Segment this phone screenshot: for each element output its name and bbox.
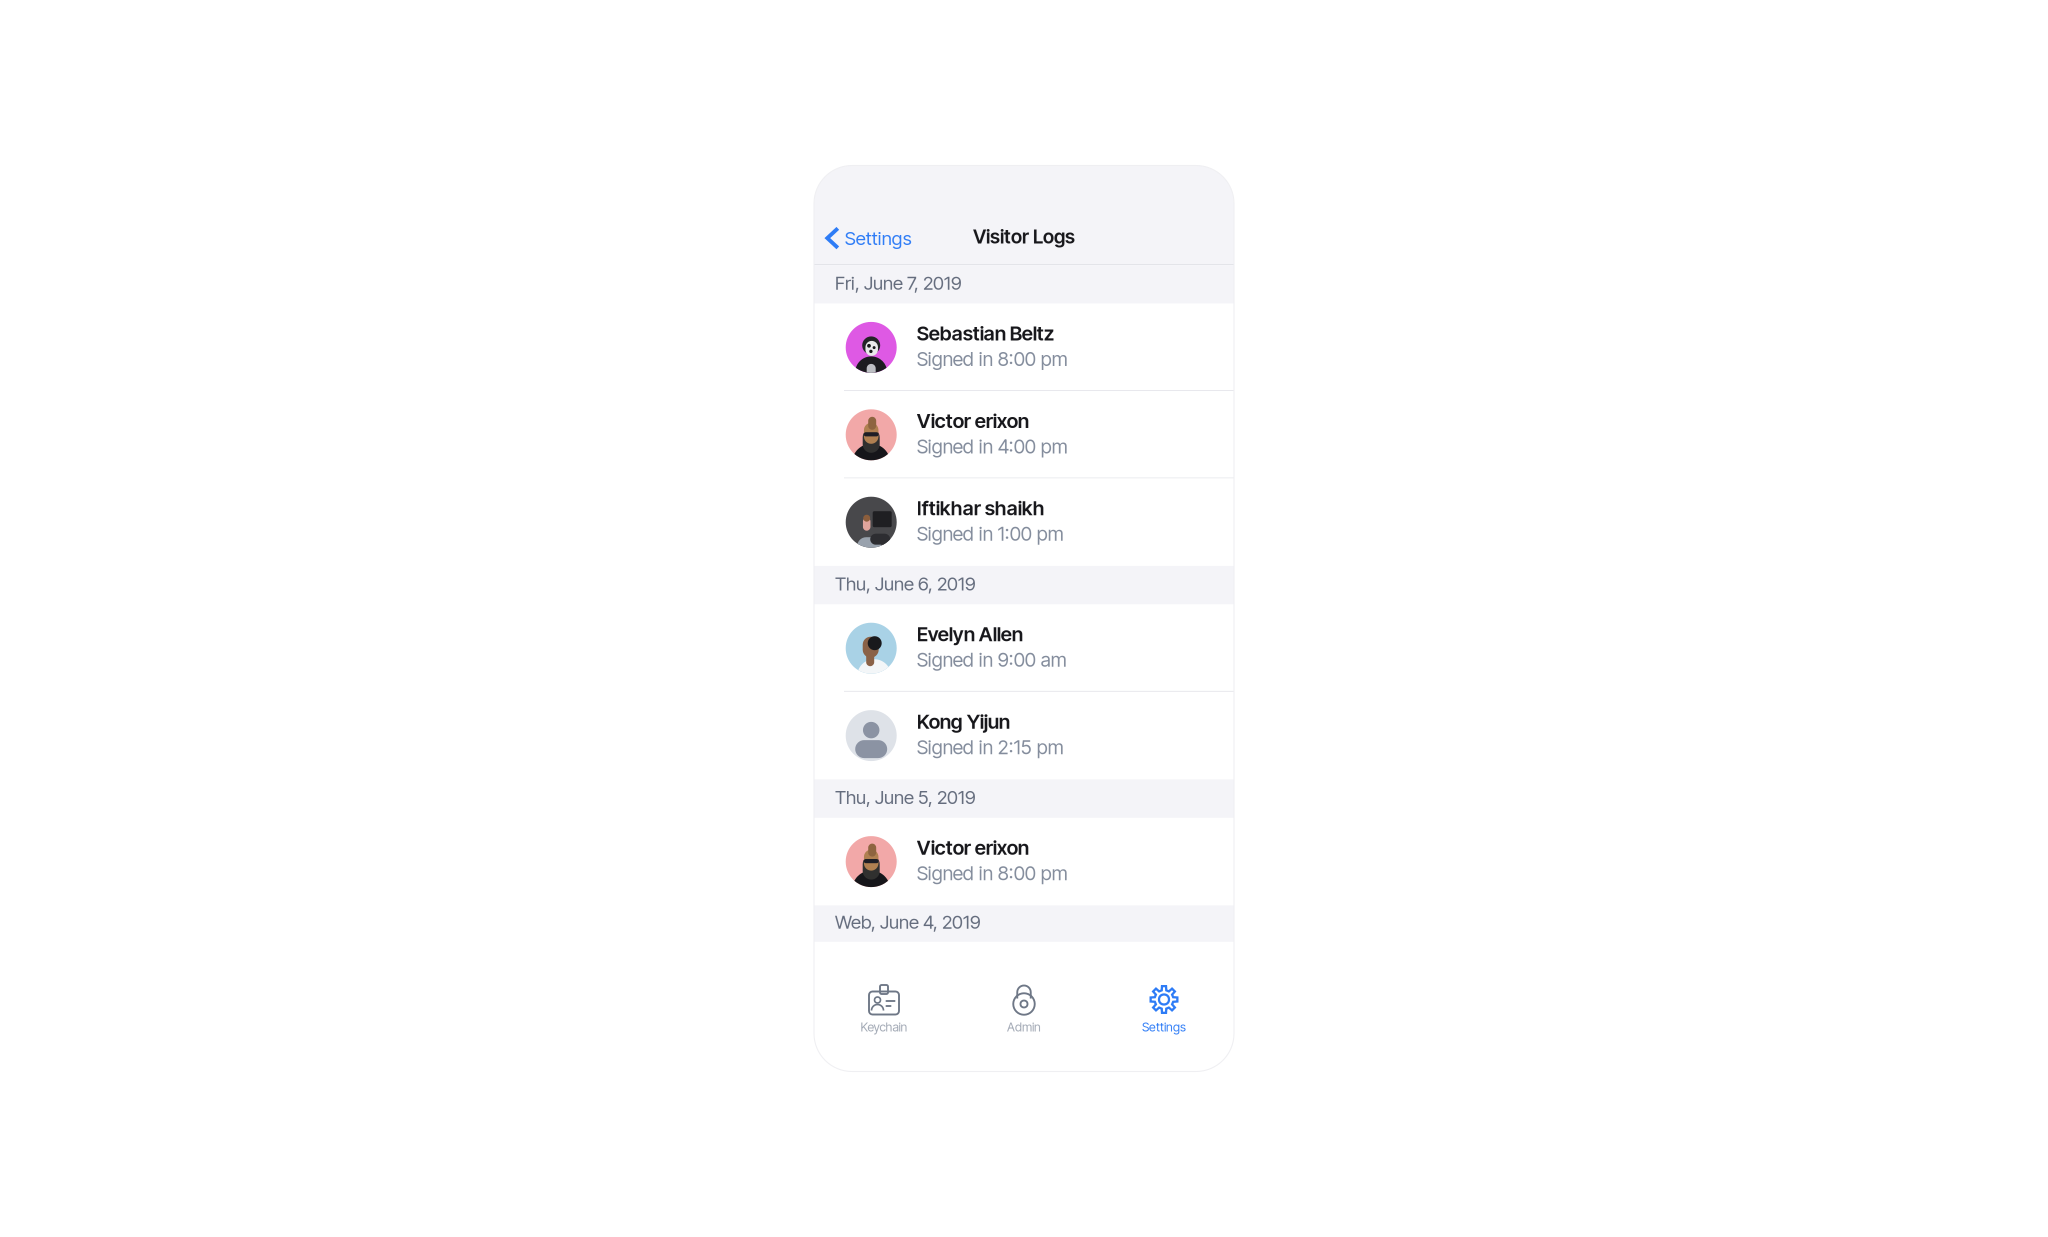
staticText: Sebastian Beltz <box>917 321 1054 345</box>
staticText: Settings <box>1142 1019 1186 1034</box>
button[interactable]: Keychain <box>814 943 954 1071</box>
staticText: Signed in 4:00 pm <box>917 435 1068 458</box>
staticText: Signed in 2:15 pm <box>917 735 1064 759</box>
button[interactable]: Settings <box>1094 943 1234 1071</box>
staticText: Signed in 1:00 pm <box>917 522 1064 545</box>
button[interactable]: Back to Settings <box>814 216 922 260</box>
staticText: Signed in 8:00 pm <box>917 347 1068 371</box>
button[interactable]: Victor erixon <box>814 818 1234 905</box>
staticText: Web, June 4, 2019 <box>835 911 981 933</box>
staticText: Thu, June 5, 2019 <box>835 786 976 808</box>
button[interactable]: Victor erixon <box>814 391 1234 478</box>
button[interactable]: Kong Yijun <box>814 692 1234 779</box>
staticText: Evelyn Allen <box>917 622 1023 646</box>
button[interactable]: Admin <box>954 943 1094 1071</box>
button[interactable]: Iftikhar shaikh <box>814 478 1234 566</box>
staticText: Signed in 8:00 pm <box>917 861 1068 885</box>
staticText: Fri, June 7, 2019 <box>835 272 962 294</box>
staticText: Victor erixon <box>917 835 1029 859</box>
button[interactable]: Sebastian Beltz <box>814 304 1234 391</box>
button[interactable]: Evelyn Allen <box>814 604 1234 692</box>
staticText: Visitor Logs <box>973 225 1075 248</box>
staticText: Admin <box>1007 1019 1041 1034</box>
staticText: Kong Yijun <box>917 709 1010 733</box>
staticText: Signed in 9:00 am <box>917 648 1067 671</box>
staticText: Thu, June 6, 2019 <box>835 572 976 595</box>
staticText: Settings <box>845 227 912 249</box>
staticText: Victor erixon <box>917 408 1029 433</box>
staticText: Keychain <box>860 1019 907 1034</box>
staticText: Iftikhar shaikh <box>917 496 1045 520</box>
